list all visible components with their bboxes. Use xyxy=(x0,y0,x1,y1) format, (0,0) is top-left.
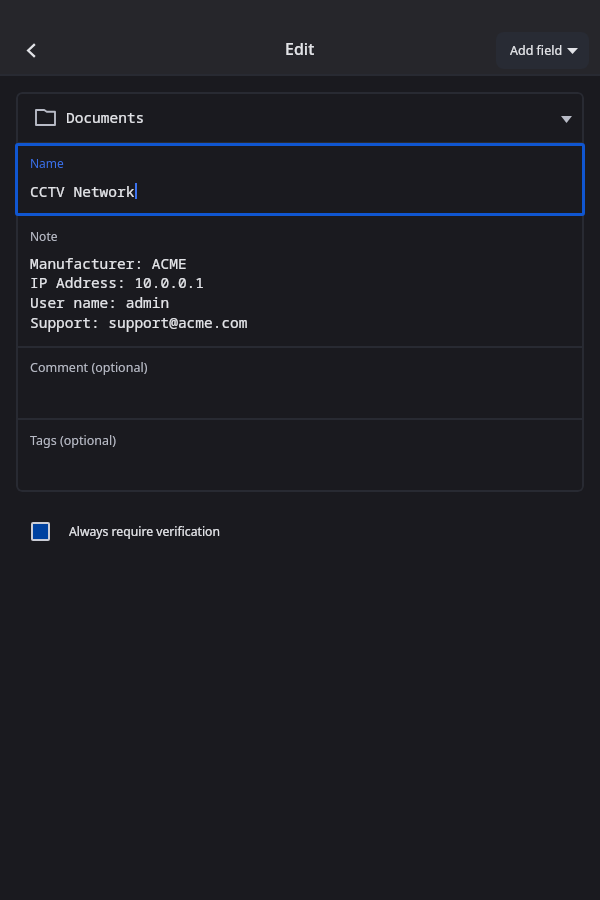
button[interactable]: Always require verification xyxy=(0,517,600,546)
staticText: Tags (optional) xyxy=(30,432,116,449)
staticText: Comment (optional) xyxy=(30,359,148,376)
staticText: Add field xyxy=(510,42,563,59)
button[interactable]: Name xyxy=(16,144,584,216)
button[interactable]: Tags (optional) xyxy=(16,420,584,492)
staticText: CCTV Network xyxy=(30,181,135,201)
staticText: Documents xyxy=(66,107,145,127)
button[interactable]: Add field xyxy=(496,32,589,69)
staticText: Manufacturer: ACME IP Address: 10.0.0.1 … xyxy=(30,253,248,333)
button[interactable]: Back xyxy=(9,27,53,71)
staticText: Always require verification xyxy=(69,523,220,540)
button[interactable]: Note xyxy=(16,216,584,346)
button[interactable]: Comment (optional) xyxy=(16,348,584,418)
staticText: Name xyxy=(30,155,64,171)
staticText: Edit xyxy=(285,38,315,60)
button[interactable]: Documents xyxy=(16,92,584,142)
staticText: Note xyxy=(30,228,58,244)
